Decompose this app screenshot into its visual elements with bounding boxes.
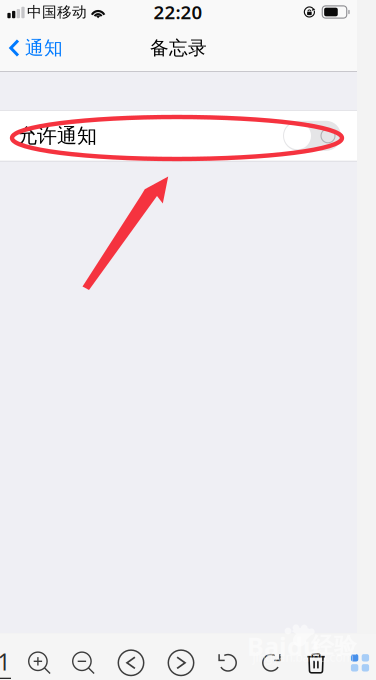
button[interactable]: Next page: [163, 640, 199, 680]
button[interactable]: Undo: [210, 640, 246, 680]
button[interactable]: All apps: [342, 640, 376, 680]
staticText: 备忘录: [150, 36, 207, 59]
staticText: 通知: [25, 36, 63, 59]
button[interactable]: Page 1: [0, 640, 22, 680]
button[interactable]: Zoom out: [65, 640, 101, 680]
staticText: 允许通知: [17, 123, 97, 148]
button[interactable]: 通知: [0, 30, 63, 65]
staticText: 22:20: [153, 0, 202, 24]
staticText: Baidu: [247, 629, 319, 663]
button[interactable]: Previous page: [113, 640, 149, 680]
staticText: 中国移动: [27, 3, 87, 21]
staticText: 经验: [311, 632, 357, 660]
button[interactable]: 允许通知: [0, 111, 357, 161]
button[interactable]: Redo: [253, 640, 289, 680]
button[interactable]: Delete: [298, 640, 334, 680]
staticText: 1: [0, 647, 10, 677]
staticText: jingyan.baidu.com: [252, 649, 353, 665]
button[interactable]: Zoom in: [21, 640, 57, 680]
